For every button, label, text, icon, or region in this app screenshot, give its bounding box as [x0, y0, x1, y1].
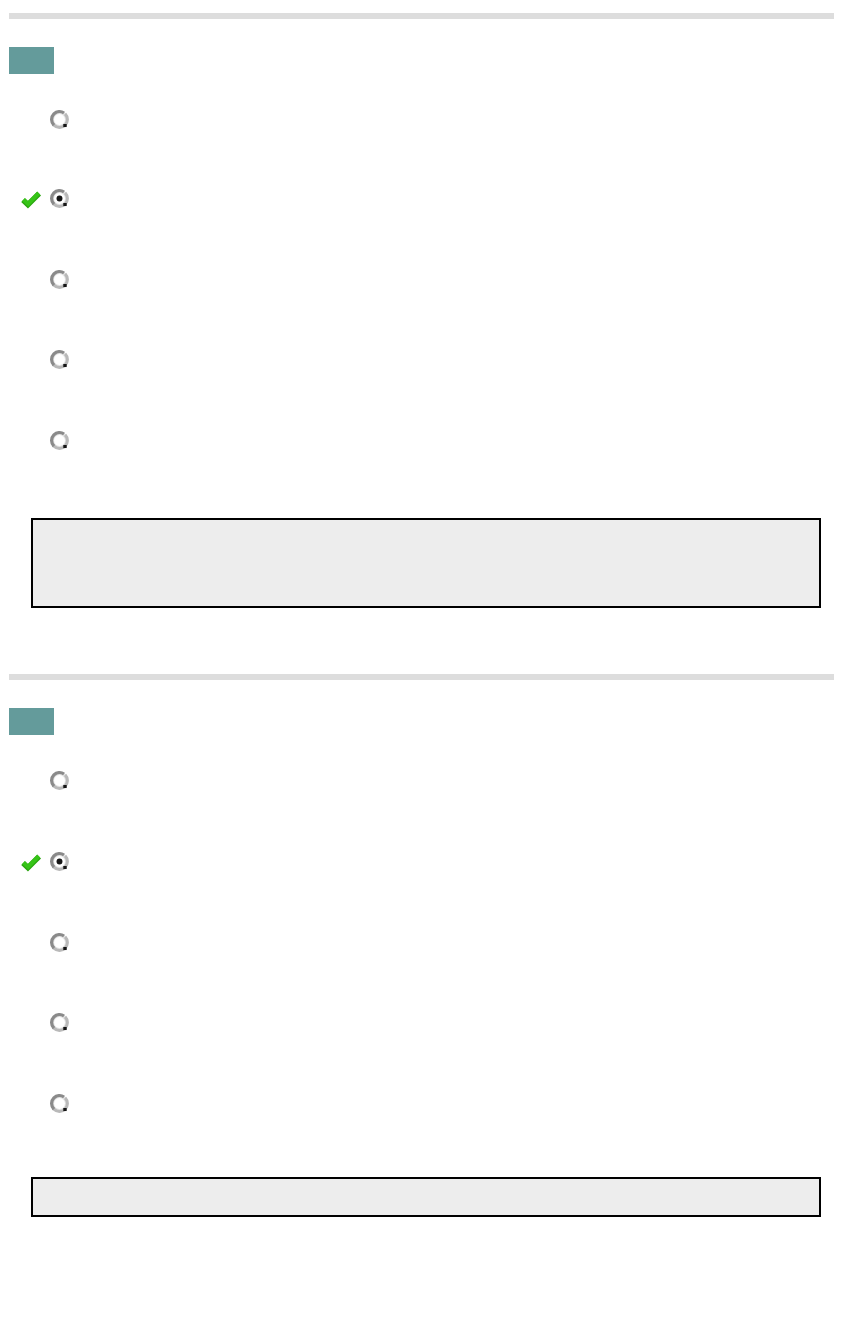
button[interactable]: Selected answer [0, 852, 843, 878]
button[interactable]: Answer option [0, 270, 843, 296]
button[interactable]: Selected answer [0, 189, 843, 215]
button[interactable]: Answer option [0, 1094, 843, 1120]
button[interactable]: Answer option [0, 350, 843, 376]
button[interactable]: Answer option [0, 1013, 843, 1039]
button[interactable]: Answer option [0, 431, 843, 457]
button[interactable]: Answer option [0, 110, 843, 136]
button[interactable]: Answer option [0, 933, 843, 959]
button[interactable]: Answer option [0, 771, 843, 797]
